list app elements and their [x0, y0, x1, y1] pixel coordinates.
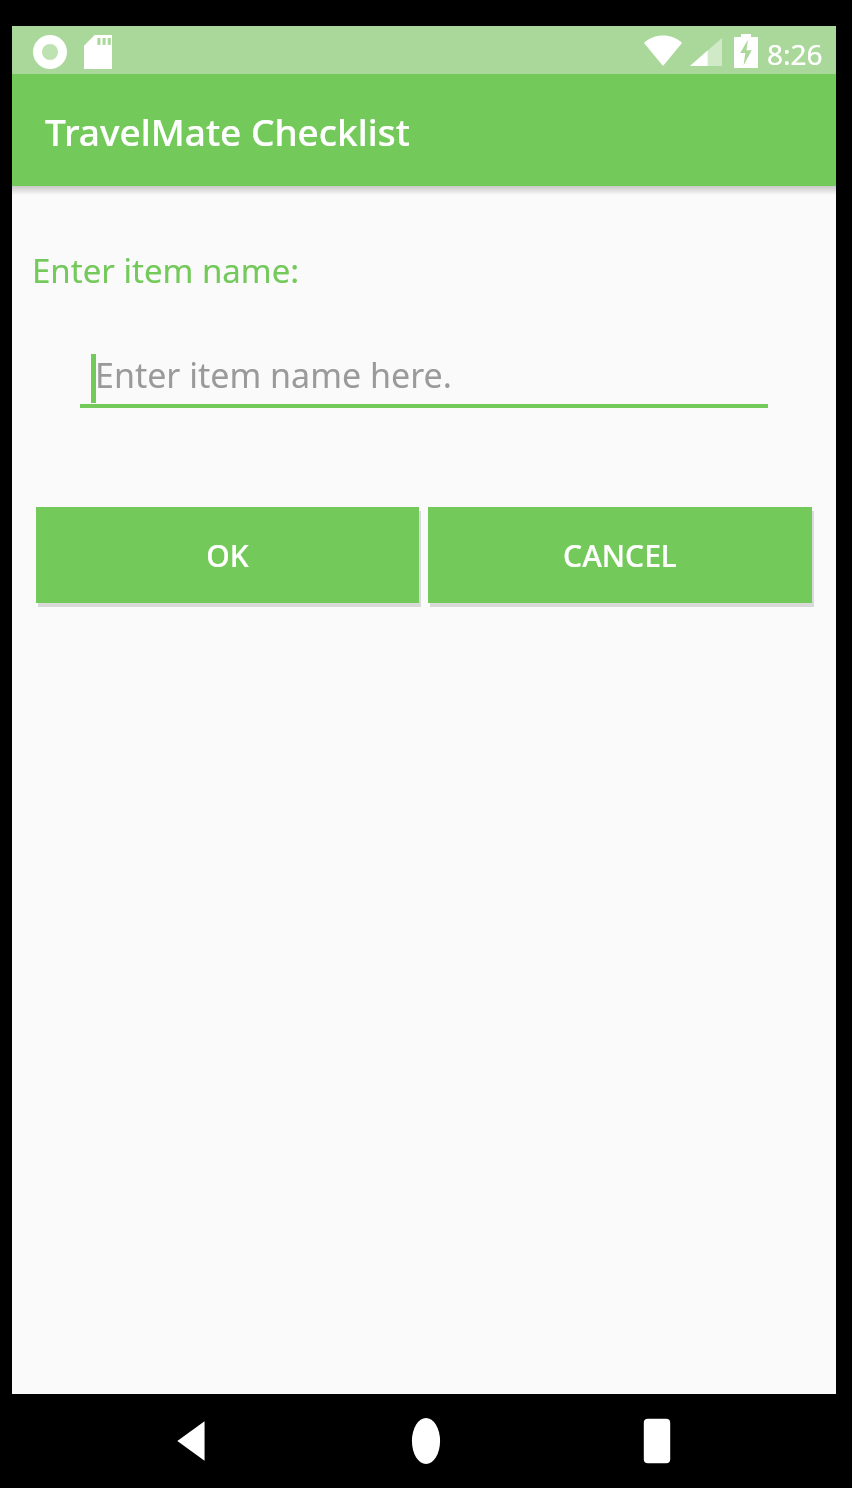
staticText: OK [206, 535, 249, 576]
button[interactable]: CANCEL [428, 507, 812, 603]
button[interactable]: Recent apps [613, 1410, 701, 1472]
staticText: 8:26 [767, 35, 823, 73]
button[interactable]: OK [36, 507, 419, 603]
button[interactable]: Enter item name here. [80, 350, 768, 434]
button[interactable]: Home [382, 1410, 470, 1472]
staticText: CANCEL [563, 535, 677, 576]
staticText: Enter item name: [32, 248, 300, 293]
button[interactable]: Back [150, 1410, 238, 1472]
staticText: TravelMate Checklist [45, 106, 410, 156]
staticText: Enter item name here. [95, 352, 452, 398]
